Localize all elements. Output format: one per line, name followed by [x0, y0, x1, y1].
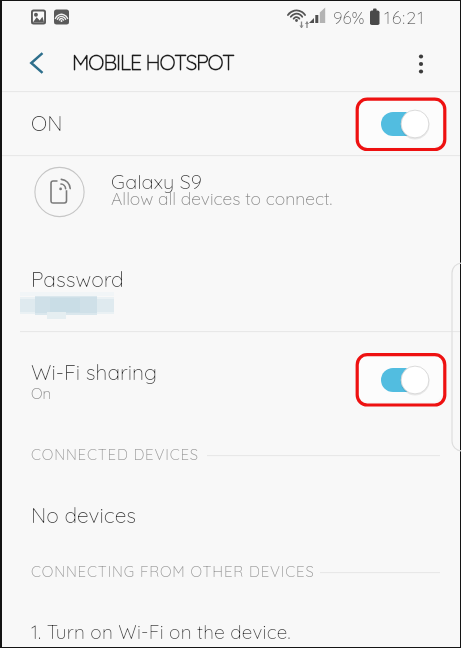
- staticText: CONNECTED DEVICES: [31, 445, 199, 464]
- staticText: Galaxy S9: [111, 169, 202, 194]
- staticText: On: [31, 384, 52, 403]
- staticText: 96%: [333, 7, 365, 28]
- button[interactable]: ON: [2, 92, 460, 156]
- staticText: 16:21: [384, 6, 425, 29]
- staticText: ON: [31, 110, 63, 136]
- staticText: Allow all devices to connect.: [111, 187, 333, 209]
- staticText: 1. Turn on Wi-Fi on the device.: [31, 620, 291, 644]
- staticText: CONNECTING FROM OTHER DEVICES: [31, 562, 315, 581]
- staticText: MOBILE HOTSPOT: [72, 49, 234, 75]
- button[interactable]: Galaxy S9: [2, 157, 460, 231]
- button[interactable]: More options: [397, 40, 445, 88]
- staticText: No devices: [31, 502, 137, 528]
- button[interactable]: Password: [2, 256, 460, 331]
- staticText: Password: [31, 266, 124, 292]
- button[interactable]: Navigate up: [13, 39, 61, 87]
- staticText: Wi-Fi sharing: [31, 359, 158, 385]
- button[interactable]: Wi-Fi sharing: [2, 346, 460, 416]
